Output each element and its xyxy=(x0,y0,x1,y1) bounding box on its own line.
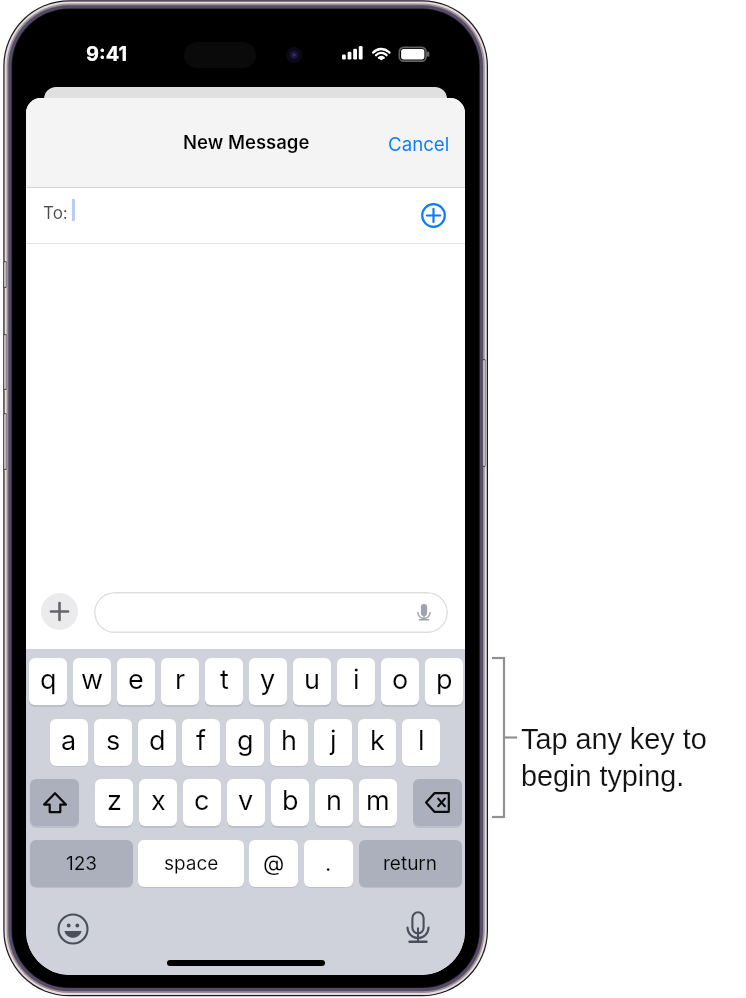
button[interactable]: f xyxy=(182,719,220,766)
staticText: Cancel xyxy=(388,133,450,156)
staticText: j xyxy=(330,724,337,757)
staticText: space xyxy=(164,852,219,875)
staticText: d xyxy=(149,724,166,757)
button[interactable]: x xyxy=(139,779,177,826)
button[interactable]: s xyxy=(94,719,132,766)
button[interactable]: o xyxy=(381,658,419,705)
staticText: @ xyxy=(263,850,285,877)
button[interactable]: t xyxy=(205,658,243,705)
staticText: z xyxy=(107,784,122,817)
staticText: q xyxy=(40,663,57,696)
staticText: s xyxy=(106,724,121,757)
button[interactable]: Cancel xyxy=(378,123,460,165)
button[interactable]: h xyxy=(270,719,308,766)
button[interactable]: space xyxy=(138,840,244,887)
button[interactable]: j xyxy=(314,719,352,766)
button[interactable]: return xyxy=(359,840,462,887)
button[interactable]: Shift xyxy=(30,779,79,826)
button[interactable]: r xyxy=(161,658,199,705)
staticText: h xyxy=(281,724,297,757)
staticText: e xyxy=(128,663,144,696)
button[interactable]: g xyxy=(226,719,264,766)
button[interactable]: l xyxy=(402,719,440,766)
button[interactable]: p xyxy=(425,658,463,705)
staticText: t xyxy=(220,663,229,696)
button[interactable]: d xyxy=(138,719,176,766)
staticText: 9:41 xyxy=(86,42,128,66)
button[interactable]: v xyxy=(227,779,265,826)
button[interactable]: e xyxy=(117,658,155,705)
staticText: m xyxy=(366,784,390,817)
staticText: c xyxy=(194,784,210,817)
staticText: g xyxy=(237,724,254,757)
button[interactable]: Delete xyxy=(413,779,462,826)
staticText: To: xyxy=(43,203,68,224)
button[interactable] xyxy=(94,592,448,633)
button[interactable]: y xyxy=(249,658,287,705)
button[interactable]: b xyxy=(271,779,309,826)
button[interactable]: 123 xyxy=(30,840,133,887)
staticText: return xyxy=(383,852,438,875)
staticText: u xyxy=(304,663,320,696)
staticText: Tap any key to begin typing. xyxy=(521,723,707,792)
button[interactable]: a xyxy=(50,719,88,766)
button[interactable]: k xyxy=(358,719,396,766)
staticText: l xyxy=(418,724,425,757)
button[interactable]: q xyxy=(29,658,67,705)
button[interactable]: i xyxy=(337,658,375,705)
staticText: n xyxy=(326,784,342,817)
button[interactable]: z xyxy=(95,779,133,826)
button[interactable]: c xyxy=(183,779,221,826)
button[interactable]: n xyxy=(315,779,353,826)
button[interactable]: Add attachment xyxy=(41,593,78,630)
staticText: w xyxy=(81,663,104,696)
staticText: p xyxy=(436,663,453,696)
button[interactable]: Add contact xyxy=(410,192,456,238)
staticText: v xyxy=(238,784,254,817)
button[interactable]: Dictation xyxy=(403,910,433,946)
button[interactable]: w xyxy=(73,658,111,705)
button[interactable]: . xyxy=(304,840,353,887)
staticText: i xyxy=(353,663,360,696)
staticText: x xyxy=(151,784,166,817)
staticText: r xyxy=(175,663,186,696)
button[interactable]: To: xyxy=(26,188,465,244)
button[interactable]: @ xyxy=(249,840,298,887)
staticText: o xyxy=(392,663,409,696)
staticText: New Message xyxy=(183,131,310,153)
staticText: . xyxy=(325,850,332,877)
staticText: f xyxy=(196,724,206,757)
staticText: k xyxy=(370,724,385,757)
staticText: a xyxy=(61,724,77,757)
button[interactable]: Emoji keyboard xyxy=(57,913,89,945)
staticText: y xyxy=(260,663,276,696)
staticText: b xyxy=(282,784,299,817)
staticText: 123 xyxy=(66,852,98,875)
button[interactable]: u xyxy=(293,658,331,705)
button[interactable]: m xyxy=(359,779,397,826)
